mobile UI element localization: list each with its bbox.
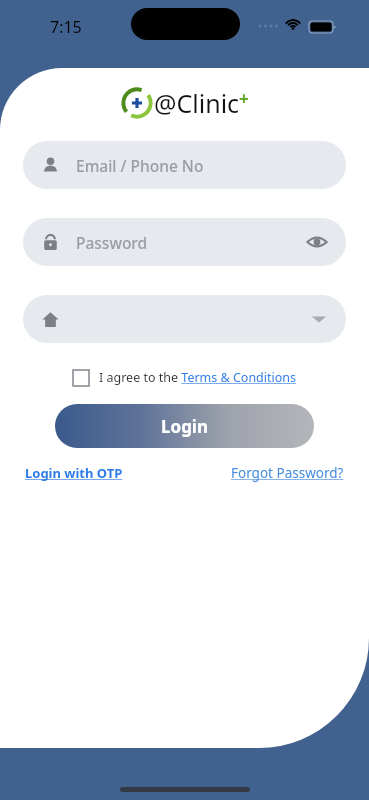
button[interactable]: Email / Phone No xyxy=(23,141,346,189)
staticText: 7:15 xyxy=(50,16,82,38)
staticText: Login xyxy=(161,415,209,438)
staticText: Password xyxy=(76,232,148,253)
button[interactable]: Login xyxy=(55,404,314,448)
button[interactable]: Open dropdown xyxy=(310,310,328,328)
button[interactable]: Agree to terms checkbox xyxy=(73,370,89,386)
staticText: @Clinic+ xyxy=(154,86,249,120)
button[interactable]: Show password xyxy=(306,231,328,253)
button[interactable]: Open dropdown xyxy=(23,295,346,343)
button[interactable]: I agree to the Terms & Conditions xyxy=(99,369,297,386)
button[interactable]: Password xyxy=(23,218,346,266)
button[interactable]: Login with OTP xyxy=(25,464,123,482)
button[interactable]: Forgot Password? xyxy=(231,464,344,482)
staticText: Email / Phone No xyxy=(76,155,204,176)
